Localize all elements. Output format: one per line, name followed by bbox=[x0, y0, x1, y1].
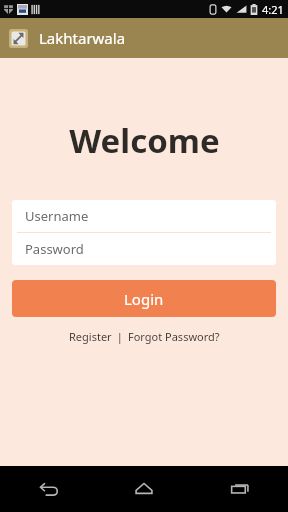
staticText: Register bbox=[69, 329, 112, 344]
button[interactable]: Back bbox=[0, 466, 96, 512]
button[interactable]: Home bbox=[96, 466, 192, 512]
staticText: Welcome bbox=[69, 118, 220, 163]
button[interactable]: Register bbox=[67, 327, 114, 346]
button[interactable]: Forgot Password? bbox=[126, 327, 222, 346]
button[interactable]: Username bbox=[12, 200, 276, 232]
staticText: Lakhtarwala bbox=[39, 28, 126, 48]
staticText: Username bbox=[25, 207, 89, 225]
button[interactable]: Login bbox=[12, 280, 276, 317]
staticText: 4:21 bbox=[262, 2, 284, 17]
staticText: Forgot Password? bbox=[128, 329, 220, 344]
button[interactable]: Password bbox=[12, 233, 276, 265]
staticText: | bbox=[114, 329, 126, 344]
button[interactable]: Recent apps bbox=[192, 466, 288, 512]
staticText: Password bbox=[25, 240, 84, 258]
other: App icon bbox=[9, 29, 28, 48]
staticText: Login bbox=[124, 289, 164, 309]
